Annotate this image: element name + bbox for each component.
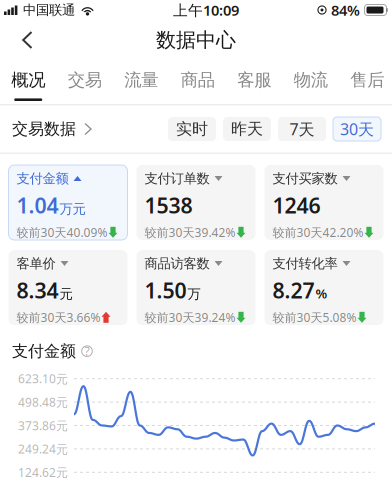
staticText: 流量	[124, 69, 158, 91]
staticText: 7天	[289, 118, 314, 140]
staticText: 1.04	[16, 191, 58, 219]
button[interactable]: Info	[81, 345, 93, 357]
staticText: 售后	[350, 69, 384, 91]
staticText: 较前30天39.24%	[144, 309, 235, 325]
staticText: 30天	[340, 118, 374, 140]
staticText: %	[315, 284, 327, 302]
staticText: 1.50	[144, 276, 186, 304]
staticText: 1538	[144, 191, 192, 219]
button[interactable]: 商品	[169, 60, 226, 104]
staticText: 商品访客数	[144, 255, 209, 272]
staticText: 客服	[237, 69, 271, 91]
staticText: 较前30天42.20%	[272, 224, 363, 240]
staticText: 交易数据	[12, 119, 76, 139]
button[interactable]: 支付金额	[8, 165, 127, 240]
button[interactable]: 支付转化率	[264, 250, 383, 325]
staticText: 支付金额	[12, 341, 76, 361]
staticText: 支付订单数	[144, 170, 209, 187]
button[interactable]: 概况	[0, 60, 56, 104]
button[interactable]: Back	[0, 22, 47, 58]
staticText: 498.48元	[18, 394, 68, 410]
staticText: 数据中心	[156, 28, 236, 52]
button[interactable]: 7天	[278, 117, 326, 141]
staticText: 8.34	[16, 276, 58, 304]
staticText: 万元	[59, 201, 85, 217]
staticText: 支付转化率	[272, 255, 337, 272]
staticText: 实时	[176, 119, 208, 139]
button[interactable]: 流量	[113, 60, 169, 104]
button[interactable]: 交易数据	[12, 119, 93, 139]
staticText: 万	[187, 286, 200, 302]
button[interactable]: 实时	[168, 117, 216, 141]
staticText: 客单价	[16, 255, 55, 272]
staticText: ?	[84, 343, 89, 359]
button[interactable]: 商品访客数	[136, 250, 255, 325]
staticText: 373.86元	[18, 417, 68, 433]
button[interactable]: 昨天	[223, 117, 271, 141]
staticText: 中国联通	[23, 2, 75, 18]
staticText: 较前30天40.09%	[16, 224, 107, 240]
staticText: 较前30天39.42%	[144, 224, 235, 240]
button[interactable]: 客服	[226, 60, 282, 104]
staticText: 元	[59, 286, 72, 302]
button[interactable]: 支付订单数	[136, 165, 255, 240]
staticText: 支付买家数	[272, 170, 337, 187]
button[interactable]: 售后	[339, 60, 392, 104]
button[interactable]: 支付买家数	[264, 165, 383, 240]
staticText: 1246	[272, 191, 320, 219]
staticText: 昨天	[231, 119, 263, 139]
staticText: 8.27	[272, 276, 314, 304]
staticText: 84%	[331, 0, 360, 20]
button[interactable]: 物流	[282, 60, 339, 104]
button[interactable]: 30天	[333, 117, 381, 141]
staticText: 124.62元	[18, 464, 68, 480]
staticText: 较前30天3.66%	[16, 309, 100, 325]
staticText: 623.10元	[18, 371, 68, 387]
staticText: 商品	[181, 69, 215, 91]
button[interactable]: 交易	[56, 60, 113, 104]
staticText: 较前30天5.08%	[272, 309, 356, 325]
staticText: 物流	[294, 69, 328, 91]
staticText: 249.24元	[18, 441, 68, 457]
button[interactable]: 客单价	[8, 250, 127, 325]
staticText: 概况	[11, 69, 45, 91]
staticText: 上午10:09	[173, 0, 239, 20]
staticText: 支付金额	[16, 170, 68, 187]
staticText: 交易	[68, 69, 102, 91]
